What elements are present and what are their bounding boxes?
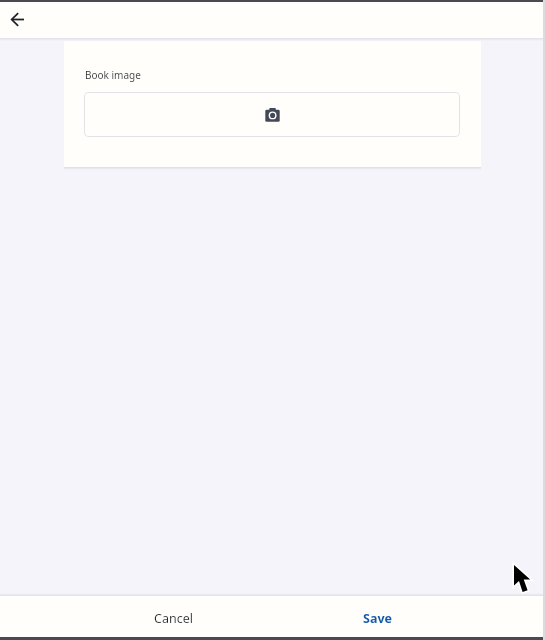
button[interactable]: Back xyxy=(3,2,31,37)
button[interactable]: Cancel xyxy=(71,600,275,637)
button[interactable]: Add book image xyxy=(84,92,460,137)
button[interactable]: Save xyxy=(275,600,479,637)
staticText: Save xyxy=(363,610,392,627)
staticText: Cancel xyxy=(154,610,193,627)
staticText: Book image xyxy=(85,68,141,82)
